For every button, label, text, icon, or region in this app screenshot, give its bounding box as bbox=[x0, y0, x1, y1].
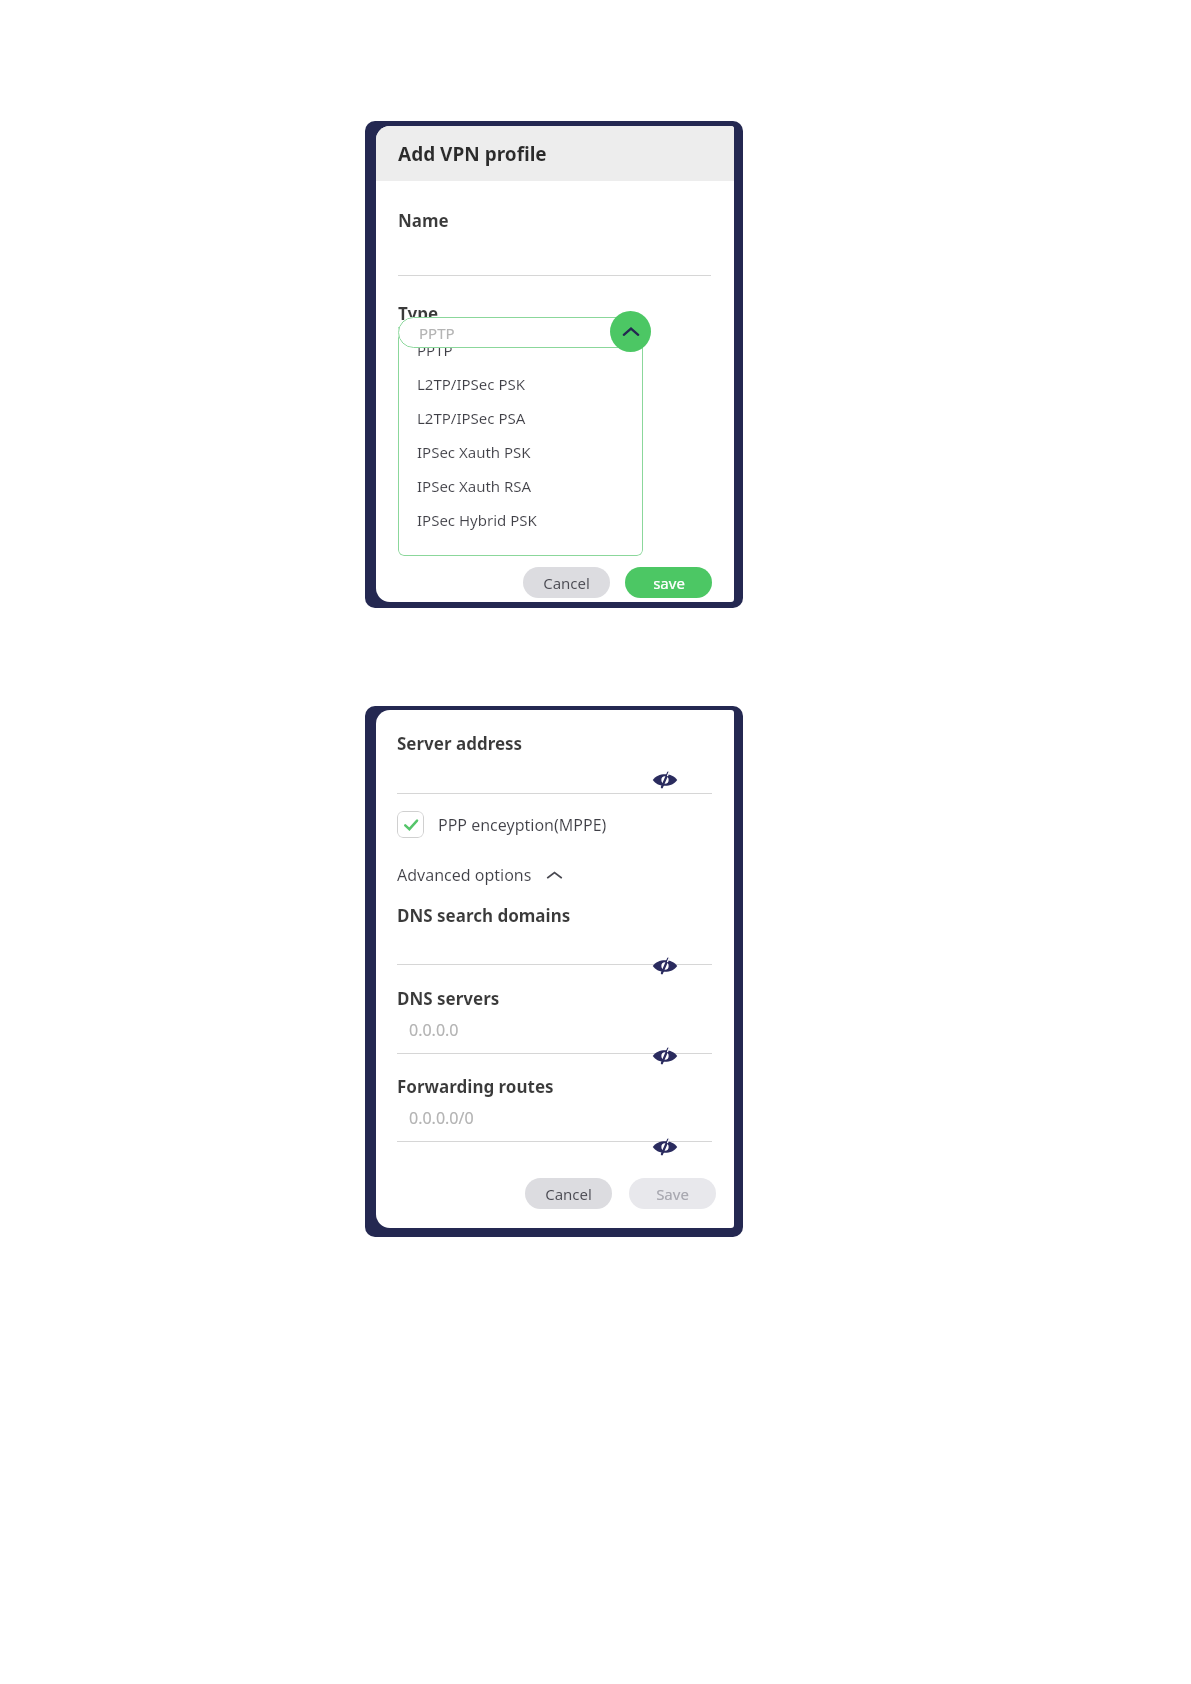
button[interactable]: Toggle visibility bbox=[648, 1039, 682, 1073]
staticText: IPSec Hybrid PSK bbox=[417, 510, 537, 530]
staticText: Name bbox=[398, 209, 449, 232]
button[interactable]: PPP enceyption(MPPE) bbox=[397, 811, 607, 838]
button[interactable]: Toggle visibility bbox=[648, 1130, 682, 1164]
button[interactable]: Cancel bbox=[523, 567, 610, 598]
staticText: IPSec Xauth PSK bbox=[417, 442, 531, 462]
button[interactable]: IPSec Hybrid PSK bbox=[398, 503, 643, 537]
staticText: L2TP/IPSec PSA bbox=[417, 408, 526, 428]
staticText: 0.0.0.0/0 bbox=[409, 1107, 474, 1129]
staticText: Cancel bbox=[545, 1184, 592, 1204]
button[interactable]: L2TP/IPSec PSA bbox=[398, 401, 643, 435]
staticText: save bbox=[653, 573, 685, 593]
staticText: PPTP bbox=[417, 340, 453, 360]
button[interactable]: Toggle visibility bbox=[648, 763, 682, 797]
staticText: IPSec Xauth RSA bbox=[417, 476, 532, 496]
staticText: PPP enceyption(MPPE) bbox=[438, 814, 607, 836]
staticText: Forwarding routes bbox=[397, 1075, 554, 1098]
staticText: Advanced options bbox=[397, 864, 532, 886]
staticText: PPTP bbox=[419, 323, 455, 343]
staticText: Type bbox=[398, 302, 439, 325]
staticText: DNS servers bbox=[397, 987, 500, 1010]
button[interactable]: Save bbox=[629, 1178, 716, 1209]
staticText: Server address bbox=[397, 732, 523, 755]
button[interactable]: PPTP bbox=[398, 317, 643, 348]
staticText: Cancel bbox=[543, 573, 590, 593]
button[interactable]: Advanced options bbox=[397, 864, 563, 886]
button[interactable]: PPTP bbox=[398, 333, 643, 367]
button[interactable]: L2TP/IPSec PSK bbox=[398, 367, 643, 401]
staticText: 0.0.0.0 bbox=[409, 1019, 459, 1041]
button[interactable]: Toggle visibility bbox=[648, 949, 682, 983]
button[interactable]: IPSec Xauth PSK bbox=[398, 435, 643, 469]
staticText: L2TP/IPSec PSK bbox=[417, 374, 525, 394]
button[interactable]: IPSec Xauth RSA bbox=[398, 469, 643, 503]
button[interactable]: Cancel bbox=[525, 1178, 612, 1209]
staticText: Save bbox=[656, 1184, 689, 1204]
staticText: Add VPN profile bbox=[398, 141, 547, 167]
button[interactable]: save bbox=[625, 567, 712, 598]
staticText: DNS search domains bbox=[397, 904, 571, 927]
button[interactable]: Collapse type list bbox=[610, 311, 651, 352]
